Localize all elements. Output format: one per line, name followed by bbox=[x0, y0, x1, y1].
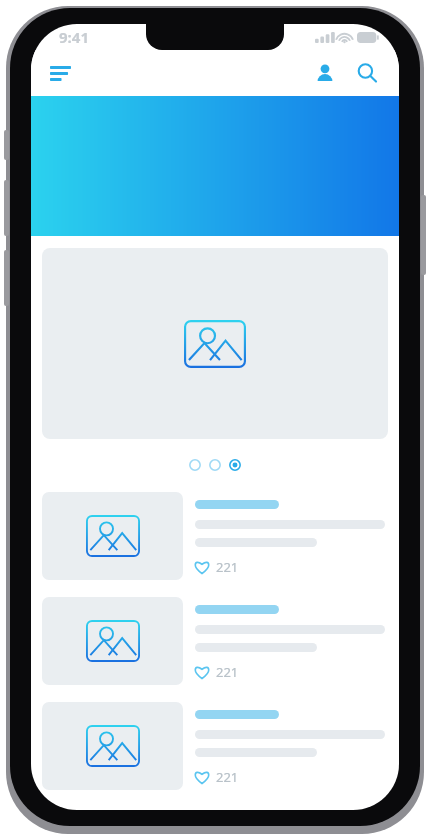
button[interactable]: 221 bbox=[42, 702, 388, 790]
button[interactable]: Page 1 bbox=[185, 455, 205, 475]
button[interactable]: Menu bbox=[40, 53, 80, 93]
button[interactable]: Account bbox=[305, 53, 345, 93]
button[interactable] bbox=[42, 248, 388, 439]
button[interactable]: Search bbox=[347, 53, 387, 93]
staticText: 221 bbox=[216, 663, 239, 681]
staticText: 221 bbox=[216, 768, 239, 786]
staticText: 221 bbox=[216, 558, 239, 576]
button[interactable]: 221 bbox=[42, 597, 388, 685]
button[interactable]: 221 bbox=[42, 492, 388, 580]
staticText: 9:41 bbox=[59, 27, 89, 47]
button[interactable]: Page 2 bbox=[205, 455, 225, 475]
button[interactable]: Page 3 bbox=[225, 455, 245, 475]
